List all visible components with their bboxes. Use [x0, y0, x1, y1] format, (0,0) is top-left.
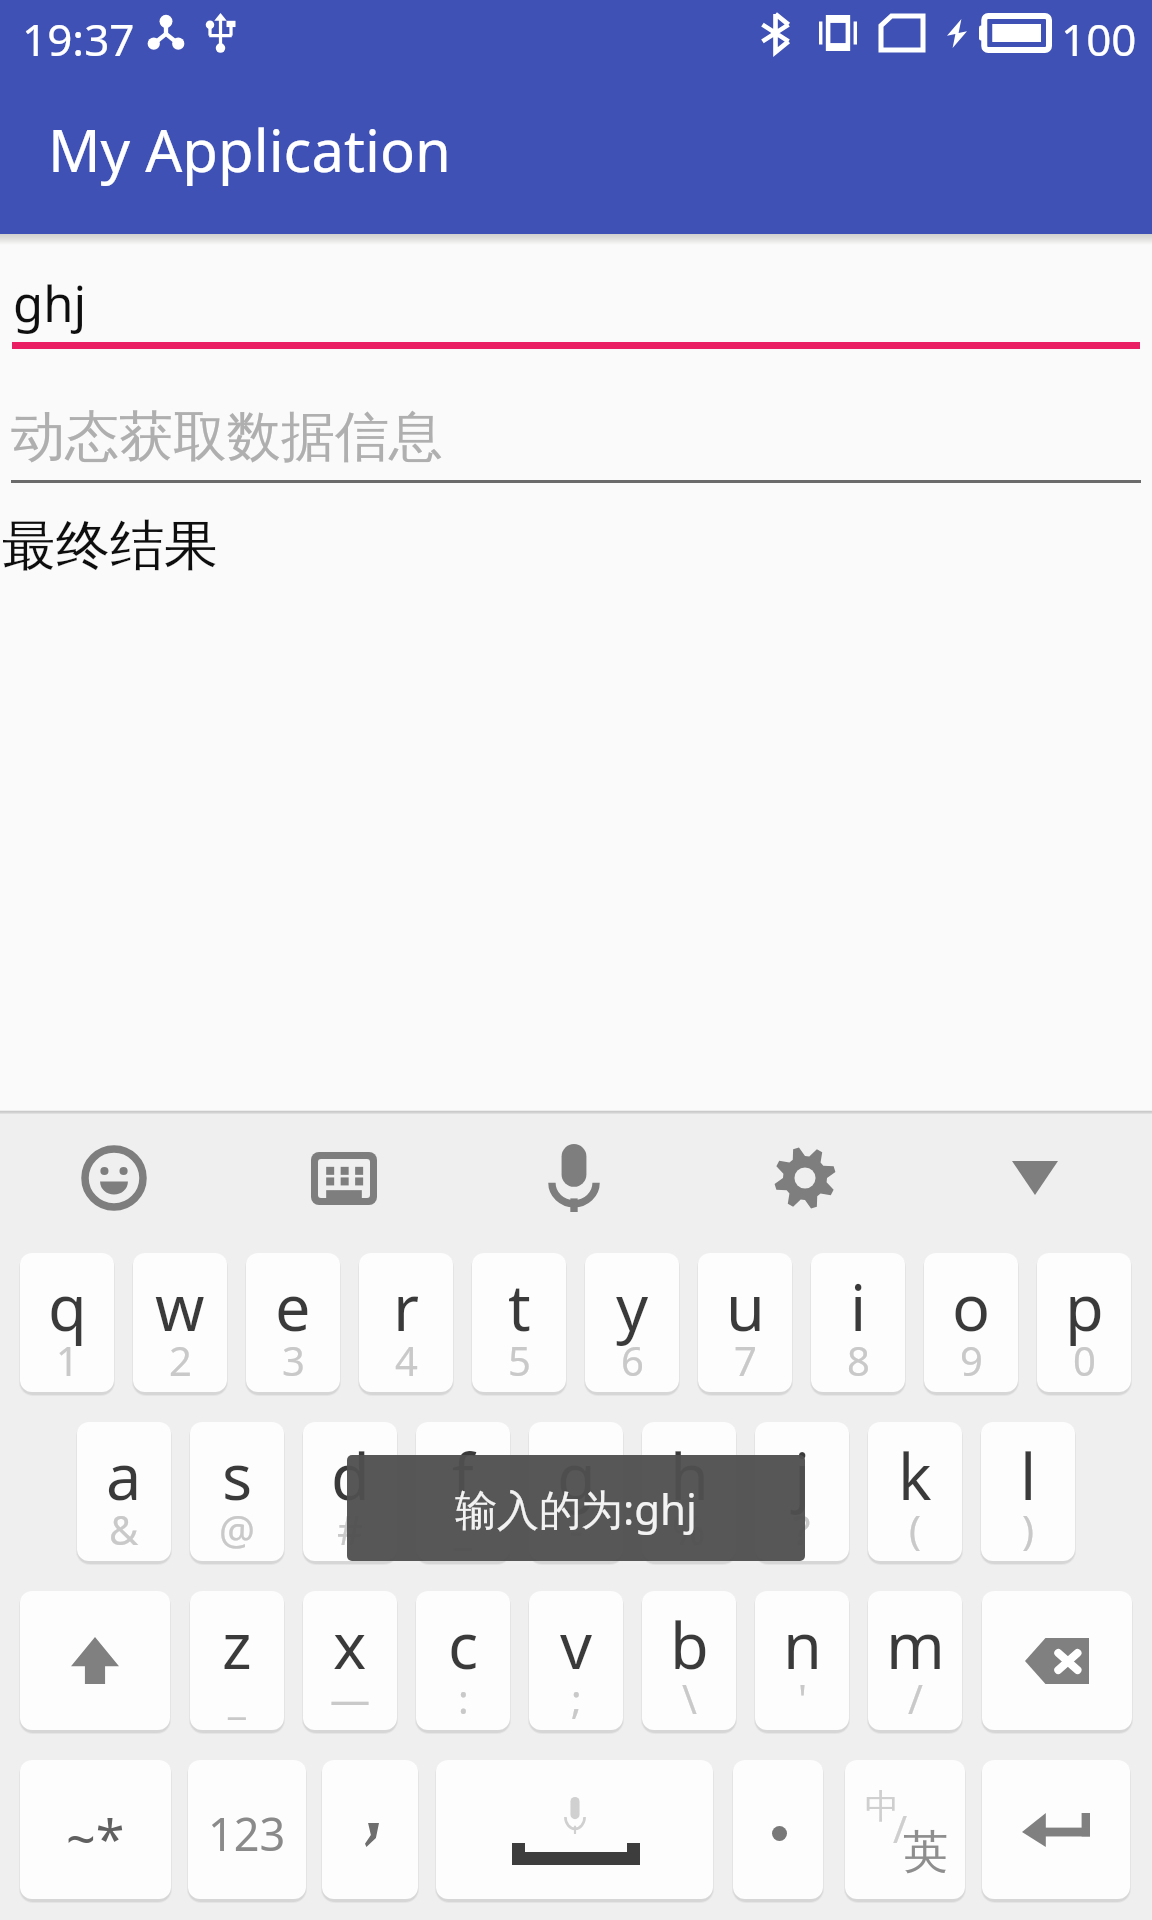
button[interactable]: r — [359, 1253, 453, 1392]
button[interactable]: Comma — [322, 1760, 418, 1899]
staticText: s — [222, 1433, 253, 1519]
button[interactable]: g — [529, 1422, 623, 1561]
button[interactable]: z — [190, 1591, 284, 1730]
staticText: d — [331, 1433, 370, 1519]
button[interactable]: d — [303, 1422, 397, 1561]
staticText: ? — [793, 1502, 811, 1556]
button[interactable]: ghj — [0, 245, 1152, 350]
staticText: w — [155, 1264, 205, 1350]
button[interactable]: Keyboard — [304, 1138, 384, 1218]
staticText: x — [333, 1602, 367, 1688]
staticText: 0 — [1073, 1333, 1096, 1387]
staticText: n — [783, 1602, 822, 1688]
staticText: p — [1065, 1264, 1104, 1350]
staticText: 19:37 — [22, 9, 135, 69]
staticText: \ — [682, 1671, 697, 1725]
button[interactable]: q — [20, 1253, 114, 1392]
staticText: u — [726, 1264, 765, 1350]
button[interactable]: k — [868, 1422, 962, 1561]
staticText: ; — [571, 1671, 582, 1725]
other: Space — [563, 1797, 587, 1834]
button[interactable]: n — [755, 1591, 849, 1730]
button[interactable]: Space — [436, 1760, 713, 1899]
staticText: 最终结果 — [2, 512, 218, 580]
button[interactable]: c — [416, 1591, 510, 1730]
staticText: & — [109, 1502, 139, 1556]
button[interactable]: l — [981, 1422, 1075, 1561]
staticText: a — [106, 1433, 142, 1519]
staticText: _ — [454, 1502, 472, 1556]
button[interactable]: j — [755, 1422, 849, 1561]
staticText: y — [616, 1264, 649, 1350]
staticText: f — [452, 1433, 474, 1519]
staticText: % — [672, 1502, 706, 1556]
button[interactable]: b — [642, 1591, 736, 1730]
button[interactable]: p — [1037, 1253, 1131, 1392]
staticText: v — [560, 1602, 593, 1688]
staticText: z — [222, 1602, 252, 1688]
button[interactable]: e — [246, 1253, 340, 1392]
staticText: - — [570, 1502, 583, 1556]
button[interactable]: v — [529, 1591, 623, 1730]
button[interactable]: x — [303, 1591, 397, 1730]
staticText: 3 — [282, 1333, 305, 1387]
staticText: ' — [798, 1671, 807, 1725]
staticText: My Application — [48, 110, 451, 189]
staticText: 123 — [208, 1803, 286, 1864]
staticText: h — [670, 1433, 709, 1519]
button[interactable]: Enter — [982, 1760, 1130, 1899]
staticText: _ — [228, 1671, 246, 1725]
button[interactable]: t — [472, 1253, 566, 1392]
staticText: g — [557, 1433, 596, 1519]
button[interactable]: m — [868, 1591, 962, 1730]
staticText: l — [1020, 1433, 1037, 1519]
staticText: i — [850, 1264, 867, 1350]
staticText: 5 — [508, 1333, 531, 1387]
other: Enter — [1022, 1813, 1090, 1847]
button[interactable]: Backspace — [982, 1591, 1132, 1730]
staticText: 1 — [56, 1333, 79, 1387]
staticText: 2 — [169, 1333, 192, 1387]
staticText: — — [330, 1671, 370, 1725]
button[interactable]: w — [133, 1253, 227, 1392]
staticText: o — [952, 1264, 991, 1350]
button[interactable]: h — [642, 1422, 736, 1561]
staticText: 输入的为:ghj — [455, 1480, 697, 1537]
staticText: 动态获取数据信息 — [11, 403, 443, 471]
staticText: ghj — [13, 270, 87, 337]
staticText: ( — [909, 1502, 921, 1556]
staticText: q — [48, 1264, 87, 1350]
button[interactable]: 动态获取数据信息 — [0, 380, 1152, 484]
button[interactable]: f — [416, 1422, 510, 1561]
staticText: 100 — [1061, 9, 1137, 69]
staticText: 8 — [847, 1333, 870, 1387]
button[interactable]: Period — [733, 1760, 823, 1899]
button[interactable]: ~* — [20, 1760, 171, 1899]
staticText: : — [458, 1671, 469, 1725]
staticText: 4 — [395, 1333, 418, 1387]
staticText: b — [670, 1602, 709, 1688]
button[interactable]: Emoji — [74, 1138, 154, 1218]
staticText: t — [508, 1264, 531, 1350]
button[interactable]: Hide keyboard — [995, 1138, 1075, 1218]
button[interactable]: 123 — [188, 1760, 306, 1899]
staticText: # — [337, 1502, 363, 1556]
button[interactable]: s — [190, 1422, 284, 1561]
button[interactable]: y — [585, 1253, 679, 1392]
staticText: k — [898, 1433, 932, 1519]
button[interactable]: Shift — [20, 1591, 170, 1730]
button[interactable]: Voice input — [534, 1138, 614, 1218]
button[interactable]: a — [77, 1422, 171, 1561]
staticText: 7 — [734, 1333, 757, 1387]
button[interactable]: i — [811, 1253, 905, 1392]
button[interactable]: Settings — [765, 1138, 845, 1218]
staticText: ) — [1022, 1502, 1034, 1556]
button[interactable]: Chinese English toggle — [845, 1760, 965, 1899]
button[interactable]: u — [698, 1253, 792, 1392]
staticText: 6 — [621, 1333, 644, 1387]
staticText: / — [893, 1802, 908, 1854]
staticText: 9 — [960, 1333, 983, 1387]
button[interactable]: o — [924, 1253, 1018, 1392]
staticText: @ — [219, 1502, 255, 1556]
staticText: m — [886, 1602, 945, 1688]
